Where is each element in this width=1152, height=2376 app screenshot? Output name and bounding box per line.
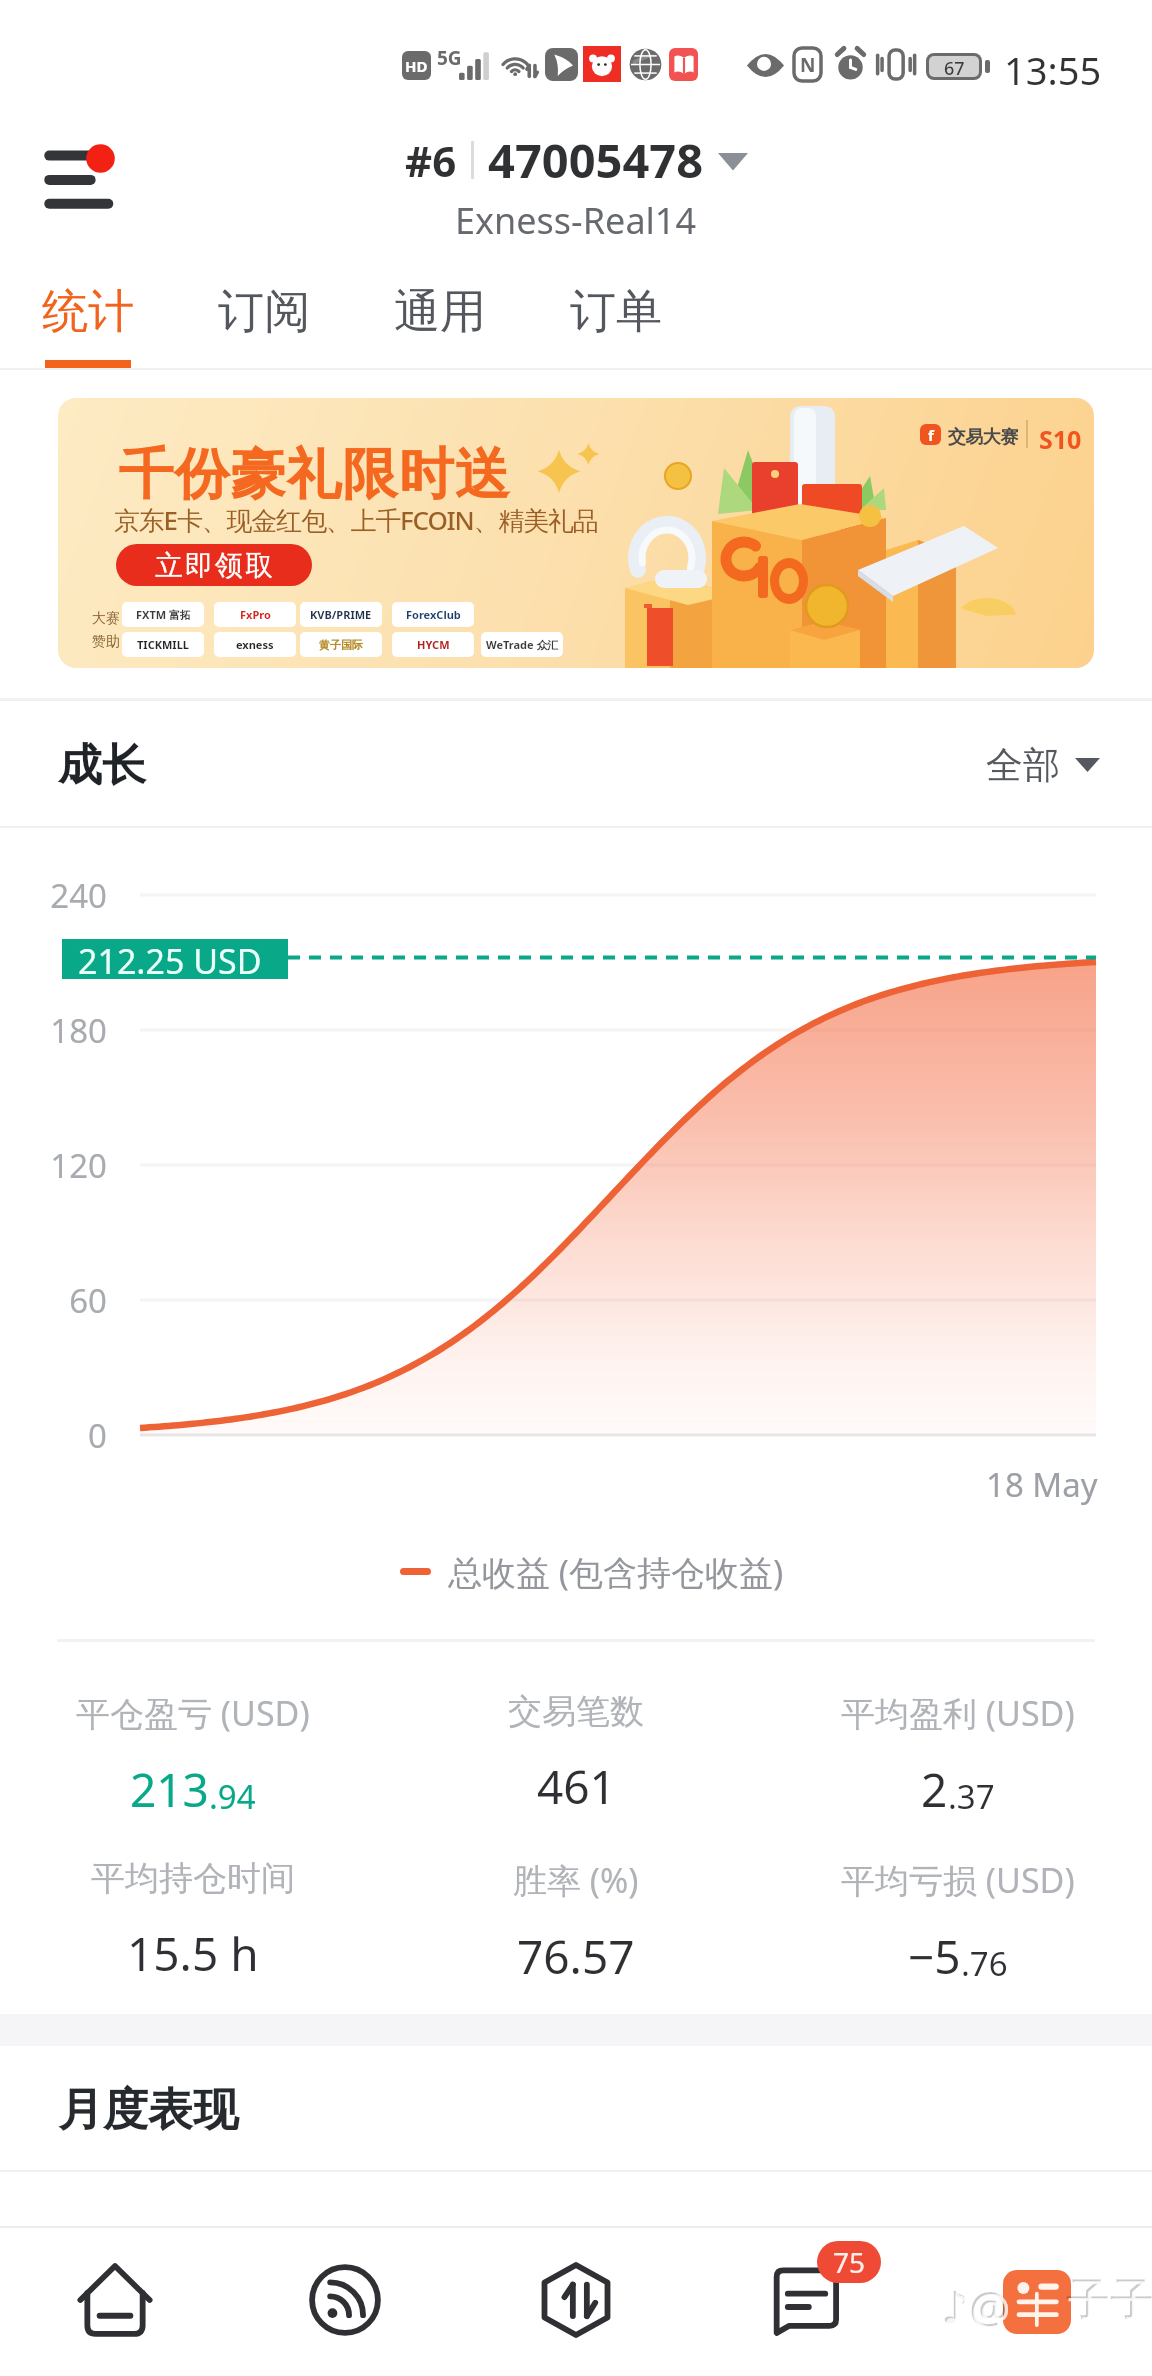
- staticText: 240: [0, 873, 107, 918]
- staticText: #6: [405, 132, 457, 189]
- staticText: 5G: [437, 45, 462, 71]
- staticText: 京东E卡、现金红包、上千FCOIN、精美礼品: [114, 502, 598, 538]
- staticText: 平均持仓时间: [91, 1857, 295, 1900]
- staticText: 461: [537, 1755, 616, 1818]
- staticText: 180: [0, 1008, 107, 1053]
- staticText: ♪@: [943, 2278, 1011, 2338]
- staticText: WeTrade 众汇: [486, 637, 559, 652]
- staticText: KVB/PRIME: [310, 607, 372, 622]
- staticText: 213: [130, 1758, 209, 1821]
- button[interactable]: 立即领取: [116, 544, 312, 586]
- button[interactable]: Menu: [24, 126, 140, 230]
- staticText: 赞助: [92, 633, 120, 651]
- staticText: 大赛: [92, 610, 120, 628]
- staticText: 黄子国际: [319, 638, 363, 652]
- staticText: 平均亏损 (USD): [841, 1857, 1075, 1903]
- staticText: exness: [236, 637, 274, 652]
- staticText: 47005478: [488, 128, 704, 192]
- staticText: 子子: [1066, 2272, 1152, 2327]
- staticText: 平均盈利 (USD): [841, 1690, 1075, 1736]
- staticText: HD: [405, 56, 428, 76]
- staticText: ♪@: [941, 2276, 1009, 2336]
- staticText: .37: [948, 1774, 995, 1819]
- button[interactable]: Profile: [936, 2226, 1136, 2374]
- staticText: N: [800, 52, 816, 78]
- button[interactable]: 通用: [352, 260, 528, 368]
- button[interactable]: Trade: [476, 2226, 676, 2374]
- staticText: 13:55: [1004, 44, 1102, 96]
- staticText: 75: [833, 2243, 866, 2281]
- staticText: Exness-Real14: [455, 196, 697, 245]
- staticText: 0: [0, 1413, 107, 1458]
- button[interactable]: 统计: [0, 260, 176, 368]
- staticText: ForexClub: [406, 607, 461, 622]
- staticText: 交易笔数: [508, 1690, 644, 1733]
- staticText: HYCM: [417, 637, 450, 652]
- staticText: f: [928, 425, 934, 445]
- staticText: 15.5 h: [127, 1922, 259, 1985]
- staticText: FxPro: [240, 607, 271, 622]
- staticText: .94: [209, 1774, 256, 1819]
- staticText: 212.25 USD: [78, 938, 262, 978]
- button[interactable]: Messages: [706, 2226, 906, 2374]
- button[interactable]: 全部: [986, 710, 1100, 820]
- button[interactable]: 订单: [528, 260, 704, 368]
- staticText: 60: [0, 1278, 107, 1323]
- staticText: 胜率 (%): [513, 1857, 639, 1903]
- staticText: 千份豪礼限时送: [118, 440, 510, 509]
- staticText: 67: [944, 56, 965, 77]
- staticText: 成长: [58, 738, 146, 793]
- button[interactable]: Signals: [245, 2226, 445, 2374]
- button[interactable]: Home: [15, 2226, 215, 2374]
- staticText: 交易大赛: [948, 426, 1018, 449]
- staticText: 2: [921, 1758, 948, 1821]
- button[interactable]: #6: [399, 126, 754, 194]
- button[interactable]: 千份豪礼限时送: [58, 398, 1094, 668]
- staticText: TICKMILL: [137, 637, 189, 652]
- staticText: 18 May: [986, 1462, 1098, 1507]
- staticText: 总收益 (包含持仓收益): [448, 1549, 784, 1595]
- staticText: 订单: [570, 283, 662, 341]
- staticText: 全部: [986, 742, 1060, 789]
- staticText: −5: [908, 1925, 961, 1988]
- staticText: 平仓盈亏 (USD): [76, 1690, 310, 1736]
- staticText: FXTM 富拓: [136, 607, 191, 622]
- button[interactable]: 订阅: [176, 260, 352, 368]
- staticText: .76: [961, 1941, 1008, 1986]
- staticText: 子子: [1068, 2274, 1152, 2329]
- staticText: S10: [1039, 422, 1082, 456]
- staticText: 立即领取: [154, 548, 274, 583]
- staticText: 订阅: [218, 283, 310, 341]
- staticText: 月度表现: [58, 2082, 238, 2139]
- staticText: 通用: [394, 283, 486, 341]
- staticText: 76.57: [517, 1925, 635, 1988]
- staticText: 统计: [42, 283, 134, 341]
- staticText: 120: [0, 1143, 107, 1188]
